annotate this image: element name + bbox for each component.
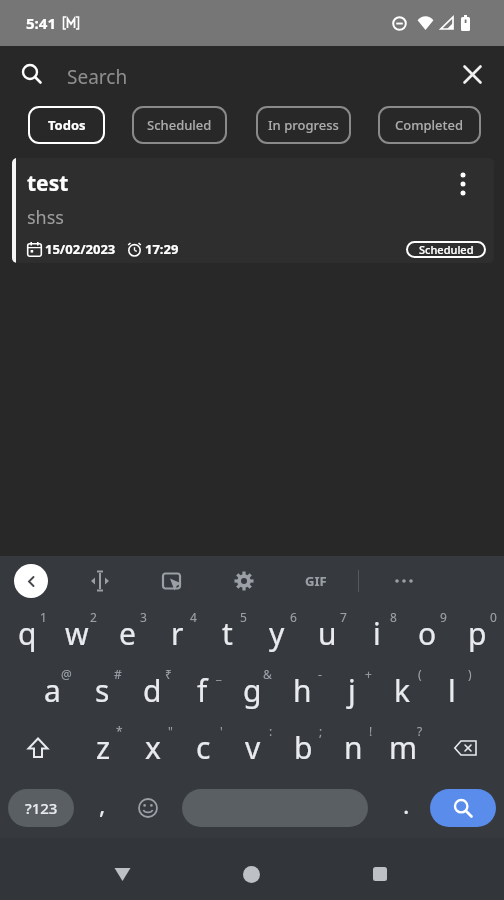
- button[interactable]: d: [127, 662, 177, 719]
- staticText: u: [318, 613, 337, 654]
- staticText: 17:29: [145, 240, 179, 258]
- staticText: Todos: [48, 116, 86, 134]
- staticText: e: [119, 613, 136, 654]
- button[interactable]: Completed: [378, 106, 481, 144]
- button[interactable]: t: [202, 605, 252, 662]
- button[interactable]: e: [102, 605, 152, 662]
- staticText: (: [418, 666, 422, 682]
- button[interactable]: [89, 570, 111, 592]
- staticText: 6: [290, 609, 297, 625]
- staticText: f: [197, 670, 208, 711]
- button[interactable]: [463, 65, 482, 84]
- button[interactable]: GIF: [305, 572, 327, 590]
- button[interactable]: n: [328, 719, 378, 776]
- staticText: *: [116, 723, 123, 739]
- button[interactable]: .: [382, 789, 430, 827]
- staticText: ?: [417, 723, 423, 739]
- staticText: 9: [440, 609, 447, 625]
- staticText: 5:41: [26, 13, 56, 33]
- button[interactable]: [455, 171, 471, 197]
- button[interactable]: x: [128, 719, 178, 776]
- button[interactable]: z: [78, 719, 128, 776]
- staticText: +: [365, 666, 372, 682]
- staticText: z: [96, 727, 111, 768]
- button[interactable]: k: [377, 662, 427, 719]
- staticText: .: [403, 788, 410, 821]
- button[interactable]: [162, 571, 182, 591]
- staticText: _: [216, 666, 222, 682]
- button[interactable]: g: [227, 662, 277, 719]
- staticText: 4: [190, 609, 197, 625]
- button[interactable]: Todos: [28, 106, 105, 144]
- button[interactable]: ?123: [8, 789, 74, 827]
- button[interactable]: test: [12, 158, 494, 263]
- button[interactable]: v: [228, 719, 278, 776]
- staticText: 7: [340, 609, 347, 625]
- staticText: m: [389, 727, 418, 768]
- button[interactable]: [0, 719, 76, 776]
- button[interactable]: b: [278, 719, 328, 776]
- button[interactable]: [98, 850, 146, 898]
- button[interactable]: f: [177, 662, 227, 719]
- staticText: j: [348, 670, 356, 711]
- button[interactable]: [182, 789, 368, 827]
- staticText: k: [394, 670, 411, 711]
- staticText: 3: [140, 609, 147, 625]
- staticText: Search: [67, 64, 128, 90]
- staticText: y: [269, 613, 285, 654]
- button[interactable]: [234, 571, 254, 591]
- staticText: 1: [40, 609, 47, 625]
- button[interactable]: h: [277, 662, 327, 719]
- staticText: i: [373, 613, 381, 654]
- button[interactable]: r: [152, 605, 202, 662]
- button[interactable]: w: [52, 605, 102, 662]
- button[interactable]: j: [327, 662, 377, 719]
- staticText: ': [220, 723, 223, 739]
- button[interactable]: [130, 789, 166, 827]
- staticText: 5: [240, 609, 247, 625]
- button[interactable]: Scheduled: [132, 106, 227, 144]
- staticText: ": [168, 723, 173, 739]
- staticText: Scheduled: [419, 242, 474, 257]
- staticText: p: [468, 613, 487, 654]
- staticText: Completed: [395, 116, 464, 134]
- staticText: Scheduled: [147, 116, 212, 134]
- button[interactable]: [227, 850, 275, 898]
- button[interactable]: [430, 789, 496, 827]
- staticText: a: [44, 670, 61, 711]
- staticText: v: [245, 727, 261, 768]
- button[interactable]: In progress: [256, 106, 351, 144]
- staticText: -: [318, 666, 322, 682]
- staticText: h: [293, 670, 312, 711]
- staticText: 15/02/2023: [45, 240, 116, 258]
- staticText: 2: [90, 609, 97, 625]
- staticText: s: [95, 670, 110, 711]
- staticText: !: [369, 723, 373, 739]
- button[interactable]: [14, 564, 48, 598]
- button[interactable]: [356, 850, 404, 898]
- button[interactable]: p: [452, 605, 502, 662]
- staticText: t: [222, 613, 233, 654]
- button[interactable]: u: [302, 605, 352, 662]
- staticText: 8: [390, 609, 397, 625]
- staticText: #: [114, 666, 122, 682]
- staticText: test: [27, 169, 69, 198]
- button[interactable]: [22, 64, 42, 84]
- button[interactable]: l: [427, 662, 477, 719]
- button[interactable]: q: [2, 605, 52, 662]
- button[interactable]: [395, 579, 413, 583]
- button[interactable]: [436, 719, 496, 776]
- staticText: ): [468, 666, 472, 682]
- button[interactable]: s: [77, 662, 127, 719]
- button[interactable]: c: [178, 719, 228, 776]
- button[interactable]: y: [252, 605, 302, 662]
- button[interactable]: m: [378, 719, 428, 776]
- button[interactable]: a: [27, 662, 77, 719]
- button[interactable]: Scheduled: [406, 241, 486, 258]
- button[interactable]: ,: [74, 789, 130, 827]
- button[interactable]: o: [402, 605, 452, 662]
- staticText: ₹: [165, 666, 172, 682]
- staticText: &: [263, 666, 272, 682]
- staticText: g: [243, 670, 262, 711]
- button[interactable]: i: [352, 605, 402, 662]
